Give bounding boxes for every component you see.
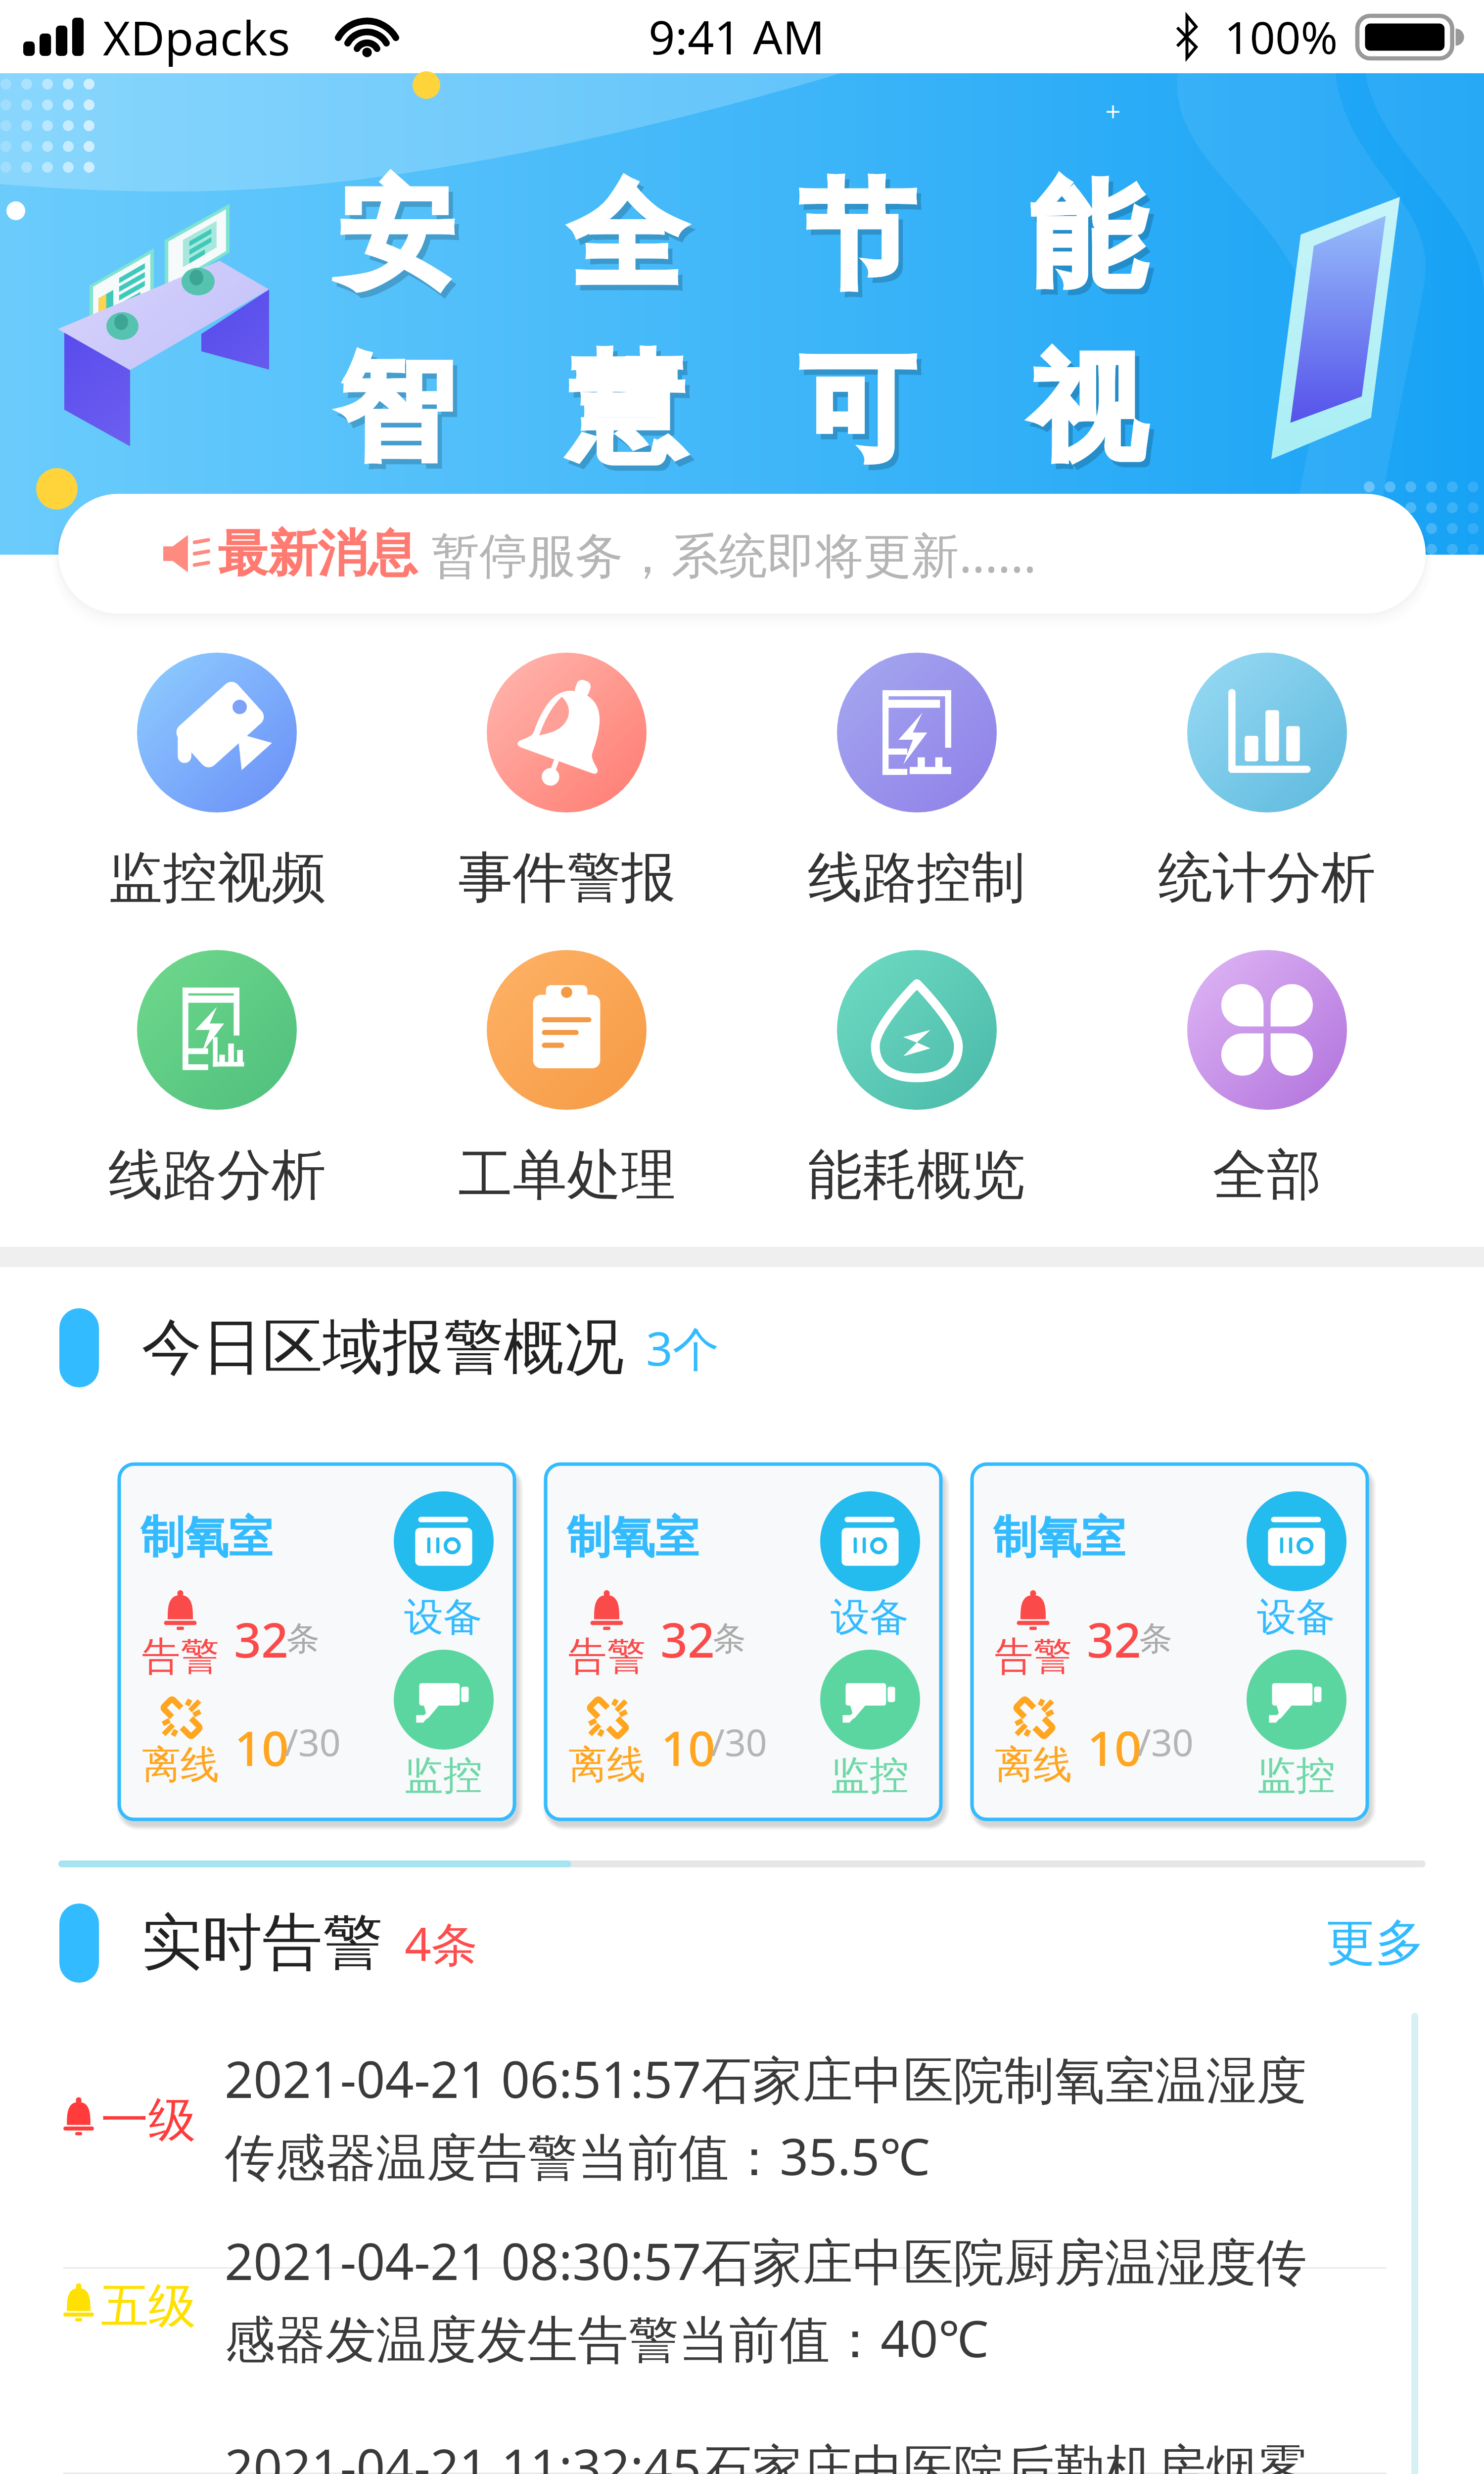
staticText: 告警 xyxy=(568,1632,646,1681)
staticText: 100% xyxy=(1224,6,1338,67)
button[interactable]: 制氧室 xyxy=(546,1464,941,1819)
staticText: 能耗概览 xyxy=(808,1141,1025,1210)
button[interactable]: 线路分析 xyxy=(42,950,392,1210)
staticText: 10 xyxy=(1087,1715,1142,1780)
staticText: 监控视频 xyxy=(108,844,326,912)
button[interactable] xyxy=(0,2473,1484,2474)
staticText: 能 xyxy=(1030,164,1145,310)
staticText: 监控 xyxy=(1257,1751,1335,1801)
button[interactable]: 线路控制 xyxy=(742,653,1092,912)
button[interactable]: 监控视频 xyxy=(42,653,392,912)
staticText: 告警 xyxy=(142,1632,219,1681)
staticText: 设备 xyxy=(831,1593,909,1642)
staticText: 离线 xyxy=(142,1741,219,1789)
staticText: 2021-04-21 06:51:57石家庄中医院制氧室温湿度 传感器温度告警当… xyxy=(225,2044,1422,2190)
staticText: 全部 xyxy=(1212,1141,1321,1210)
staticText: 全 xyxy=(569,164,684,310)
staticText: 监控 xyxy=(831,1751,909,1801)
staticText: 智 xyxy=(338,337,454,482)
staticText: /30 xyxy=(711,1716,767,1767)
staticText: 五级 xyxy=(101,2277,196,2336)
staticText: 智 xyxy=(343,342,458,488)
staticText: 节 xyxy=(804,170,919,315)
button[interactable]: 更多 xyxy=(1326,1912,1425,1974)
staticText: 能 xyxy=(1034,170,1150,315)
staticText: 统计分析 xyxy=(1158,844,1376,912)
staticText: 条 xyxy=(1139,1618,1172,1659)
button[interactable]: 制氧室 xyxy=(119,1464,514,1819)
staticText: 事件警报 xyxy=(458,844,676,912)
button[interactable]: 全部 xyxy=(1092,950,1442,1210)
staticText: 设备 xyxy=(404,1593,482,1642)
button[interactable]: 事件警报 xyxy=(392,653,742,912)
staticText: 32 xyxy=(660,1607,715,1671)
staticText: 可 xyxy=(799,337,915,482)
staticText: 10 xyxy=(661,1715,715,1780)
staticText: 最新消息 xyxy=(218,523,417,585)
staticText: 离线 xyxy=(568,1741,646,1789)
staticText: /30 xyxy=(1137,1716,1194,1767)
staticText: 制氧室 xyxy=(567,1510,699,1565)
staticText: 9:41 AM xyxy=(649,5,825,68)
staticText: 可 xyxy=(804,342,919,488)
button[interactable] xyxy=(0,2267,1484,2473)
staticText: /30 xyxy=(284,1716,341,1767)
button[interactable]: 能耗概览 xyxy=(742,950,1092,1210)
staticText: 条 xyxy=(713,1618,746,1659)
staticText: 更多 xyxy=(1326,1912,1425,1974)
staticText: 10 xyxy=(234,1715,289,1780)
button[interactable] xyxy=(0,2062,1484,2267)
staticText: 今日区域报警概况 xyxy=(141,1310,624,1386)
staticText: 2021-04-21 11:32:45石家庄中医院后勤机房烟雾 传感器发温度发生 xyxy=(225,2432,1422,2474)
staticText: 暂停服务，系统即将更新...... xyxy=(431,521,1036,586)
staticText: 4条 xyxy=(405,1911,478,1975)
staticText: 条 xyxy=(286,1618,320,1659)
staticText: 视 xyxy=(1034,342,1150,488)
button[interactable]: 工单处理 xyxy=(392,950,742,1210)
staticText: 制氧室 xyxy=(140,1510,273,1565)
staticText: 线路控制 xyxy=(808,844,1025,912)
staticText: 监控 xyxy=(404,1751,482,1801)
button[interactable]: 统计分析 xyxy=(1092,653,1442,912)
staticText: XDpacks xyxy=(103,5,290,69)
staticText: 全 xyxy=(573,170,689,315)
button[interactable]: 最新消息 xyxy=(58,494,1426,614)
staticText: 设备 xyxy=(1257,1593,1335,1642)
button[interactable]: 制氧室 xyxy=(972,1464,1367,1819)
staticText: 安 xyxy=(338,164,454,310)
staticText: 告警 xyxy=(995,1632,1072,1681)
staticText: 32 xyxy=(234,1607,288,1671)
staticText: 节 xyxy=(799,164,915,310)
staticText: 一级 xyxy=(101,2091,196,2150)
staticText: 工单处理 xyxy=(458,1141,676,1210)
staticText: 实时告警 xyxy=(141,1905,383,1981)
staticText: 3个 xyxy=(646,1316,719,1380)
staticText: 离线 xyxy=(995,1741,1072,1789)
staticText: 视 xyxy=(1030,337,1145,482)
staticText: 32 xyxy=(1087,1607,1141,1671)
staticText: 慧 xyxy=(573,342,689,488)
staticText: 慧 xyxy=(569,337,684,482)
staticText: 线路分析 xyxy=(108,1141,326,1210)
staticText: 2021-04-21 08:30:57石家庄中医院厨房温湿度传 感器发温度发生告… xyxy=(225,2226,1422,2372)
staticText: 制氧室 xyxy=(993,1510,1125,1565)
staticText: 安 xyxy=(343,170,458,315)
